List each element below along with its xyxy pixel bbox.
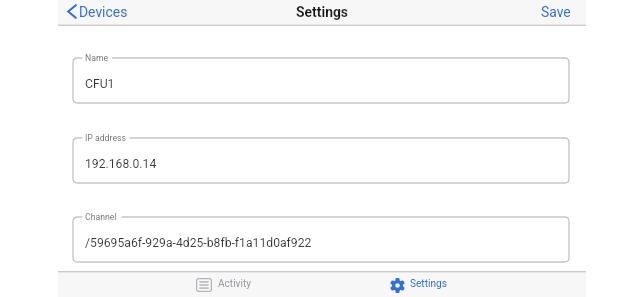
staticText: Settings (296, 4, 348, 20)
button[interactable]: 192.168.0.14 (73, 138, 569, 183)
staticText: CFU1 (85, 77, 115, 91)
staticText: Settings (410, 278, 447, 290)
staticText: /59695a6f-929a-4d25-b8fb-f1a11d0af922 (85, 236, 312, 250)
staticText: Activity (218, 278, 252, 290)
button[interactable]: /59695a6f-929a-4d25-b8fb-f1a11d0af922 (73, 217, 569, 262)
staticText: IP address (85, 133, 126, 143)
staticText: Save (541, 4, 571, 20)
staticText: Channel (85, 212, 117, 222)
button[interactable]: Save (525, 0, 586, 26)
button[interactable]: Activity (196, 271, 252, 297)
staticText: 192.168.0.14 (85, 157, 157, 171)
staticText: Devices (79, 4, 128, 20)
other: Back to Devices (67, 4, 77, 19)
button[interactable]: Settings (391, 271, 447, 297)
button[interactable]: Back to Devices (58, 0, 136, 26)
staticText: Name (85, 53, 109, 63)
button[interactable]: CFU1 (73, 58, 569, 103)
